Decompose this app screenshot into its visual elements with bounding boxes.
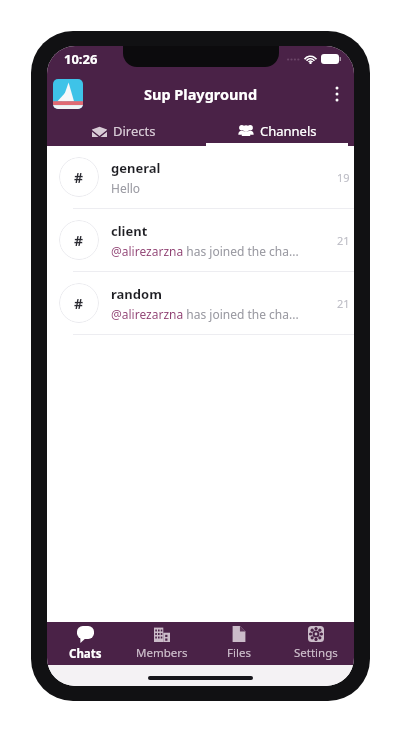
button[interactable]: # <box>47 146 354 208</box>
staticText: Files <box>227 645 251 661</box>
button[interactable]: # <box>47 209 354 271</box>
staticText: Members <box>136 645 188 661</box>
staticText: 19 <box>337 170 350 185</box>
button[interactable]: # <box>47 272 354 334</box>
button[interactable]: Members <box>123 622 200 665</box>
button[interactable]: Files <box>200 622 277 665</box>
button[interactable]: Directs <box>47 116 200 146</box>
staticText: @alirezarzna has joined the cha... <box>111 243 299 259</box>
staticText: Sup Playground <box>144 84 258 104</box>
staticText: client <box>111 222 148 240</box>
staticText: Chats <box>69 646 102 662</box>
staticText: @alirezarzna has joined the cha... <box>111 306 299 322</box>
staticText: 21 <box>337 296 350 311</box>
button[interactable]: Settings <box>277 622 354 665</box>
staticText: Channels <box>260 122 317 140</box>
button[interactable]: Workspace logo <box>53 79 83 109</box>
button[interactable]: Chats <box>47 622 123 665</box>
staticText: Hello <box>111 180 141 196</box>
staticText: # <box>74 231 84 250</box>
staticText: # <box>74 168 84 187</box>
staticText: Settings <box>294 645 338 661</box>
staticText: random <box>111 285 162 303</box>
staticText: general <box>111 159 161 177</box>
staticText: # <box>74 294 84 313</box>
button[interactable]: More options <box>320 77 354 111</box>
staticText: 10:26 <box>64 50 98 68</box>
staticText: Directs <box>113 122 156 140</box>
button[interactable]: Channels <box>200 116 354 146</box>
staticText: 21 <box>337 233 350 248</box>
